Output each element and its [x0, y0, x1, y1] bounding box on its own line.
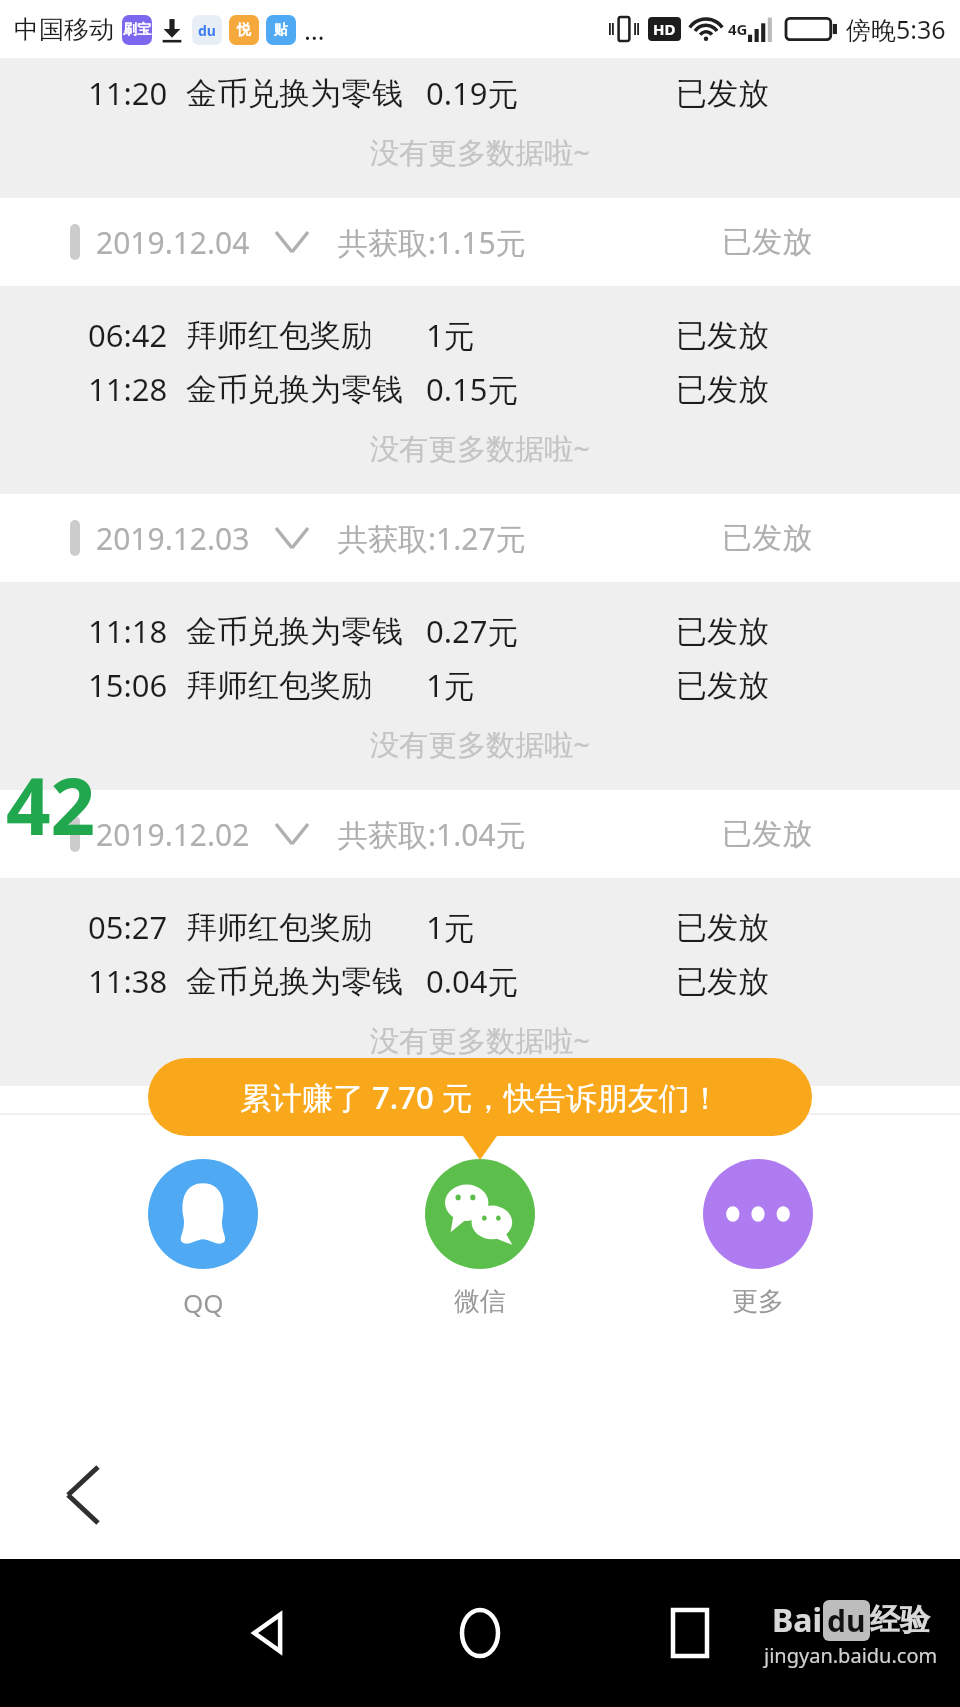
staticText: 中国移动: [14, 14, 114, 45]
button[interactable]: 11:28: [0, 362, 960, 416]
staticText: 金币兑换为零钱: [186, 962, 403, 1001]
staticText: 没有更多数据啦~: [370, 1020, 590, 1060]
button[interactable]: 2019.12.03: [0, 494, 960, 582]
staticText: 刷宝: [123, 21, 151, 39]
staticText: 共获取:1.27元: [338, 518, 526, 559]
staticText: 2019.12.04: [96, 222, 250, 263]
button[interactable]: 11:38: [0, 954, 960, 1008]
button[interactable]: 06:42: [0, 308, 960, 362]
staticText: Bai: [772, 1598, 823, 1642]
staticText: 06:42: [88, 314, 168, 356]
staticText: du: [827, 1600, 866, 1641]
staticText: 1元: [426, 314, 475, 356]
staticText: 2019.12.02: [96, 814, 250, 855]
staticText: 05:27: [88, 906, 168, 948]
button[interactable]: Recent apps: [650, 1593, 730, 1673]
staticText: 累计赚了 7.70 元，快告诉朋友们！: [240, 1076, 721, 1118]
staticText: jingyan.baidu.com: [764, 1642, 938, 1669]
staticText: HD: [653, 19, 676, 39]
button[interactable]: 11:18: [0, 604, 960, 658]
staticText: 贴: [274, 21, 288, 39]
staticText: 已发放: [676, 666, 769, 705]
staticText: 共获取:1.04元: [338, 814, 526, 855]
staticText: 更多: [732, 1285, 784, 1318]
button[interactable]: 2019.12.04: [0, 198, 960, 286]
staticText: 4G: [728, 19, 748, 39]
button[interactable]: 15:06: [0, 658, 960, 712]
staticText: 共获取:1.15元: [338, 222, 526, 263]
staticText: 42: [6, 752, 96, 858]
staticText: 0.15元: [426, 368, 519, 410]
button[interactable]: Back: [230, 1593, 310, 1673]
staticText: 金币兑换为零钱: [186, 370, 403, 409]
button[interactable]: 累计赚了 7.70 元，快告诉朋友们！: [148, 1058, 812, 1136]
staticText: 已发放: [676, 74, 769, 113]
button[interactable]: 更多: [683, 1159, 833, 1318]
staticText: 已发放: [722, 815, 812, 853]
staticText: 0.04元: [426, 960, 519, 1002]
staticText: …: [304, 12, 325, 47]
staticText: 已发放: [722, 519, 812, 557]
staticText: 经验: [870, 1601, 930, 1639]
button[interactable]: 11:20: [0, 66, 960, 120]
button[interactable]: 05:27: [0, 900, 960, 954]
staticText: 11:20: [88, 72, 168, 114]
staticText: du: [198, 21, 216, 40]
button[interactable]: 2019.12.02: [0, 790, 960, 878]
staticText: 拜师红包奖励: [186, 908, 372, 947]
button[interactable]: Home: [440, 1593, 520, 1673]
staticText: 没有更多数据啦~: [370, 428, 590, 468]
staticText: 微信: [454, 1285, 506, 1318]
button[interactable]: 微信: [405, 1159, 555, 1318]
staticText: 11:18: [88, 610, 168, 652]
staticText: 拜师红包奖励: [186, 666, 372, 705]
staticText: 1元: [426, 664, 475, 706]
staticText: 已发放: [676, 962, 769, 1001]
staticText: 已发放: [722, 223, 812, 261]
staticText: 已发放: [676, 908, 769, 947]
staticText: 已发放: [676, 316, 769, 355]
staticText: 傍晚5:36: [846, 12, 946, 46]
staticText: 0.27元: [426, 610, 519, 652]
staticText: 2019.12.03: [96, 518, 250, 559]
staticText: 已发放: [676, 612, 769, 651]
staticText: 金币兑换为零钱: [186, 74, 403, 113]
staticText: 0.19元: [426, 72, 519, 114]
staticText: 拜师红包奖励: [186, 316, 372, 355]
staticText: 1元: [426, 906, 475, 948]
staticText: 没有更多数据啦~: [370, 724, 590, 764]
button[interactable]: Back: [48, 1460, 118, 1530]
staticText: 11:38: [88, 960, 168, 1002]
staticText: 金币兑换为零钱: [186, 612, 403, 651]
staticText: QQ: [183, 1285, 224, 1320]
staticText: 悦: [237, 21, 251, 39]
staticText: 已发放: [676, 370, 769, 409]
staticText: 11:28: [88, 368, 168, 410]
staticText: 15:06: [88, 664, 168, 706]
staticText: 没有更多数据啦~: [370, 132, 590, 172]
button[interactable]: QQ: [128, 1159, 278, 1320]
